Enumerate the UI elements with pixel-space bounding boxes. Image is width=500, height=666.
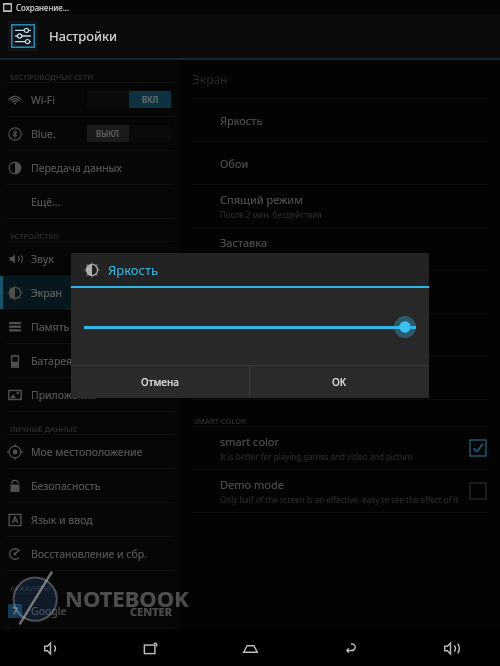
staticText: Безопасность	[31, 479, 101, 493]
button[interactable]: Приложения	[0, 378, 180, 411]
button[interactable]: Беспроводной проектор	[180, 357, 500, 399]
button[interactable]: Передача данных	[0, 151, 180, 184]
button[interactable]: Восстановление и сбр.	[0, 537, 180, 570]
button[interactable]: Recents	[100, 630, 200, 666]
staticText: ВКЛ	[142, 94, 159, 105]
button[interactable]: Blue.	[0, 117, 180, 150]
button[interactable]: ВЫКЛ	[87, 125, 171, 142]
button[interactable]: Экран	[0, 276, 180, 309]
button[interactable]: Google	[0, 594, 180, 627]
button[interactable]: ВКЛ	[87, 91, 171, 108]
staticText: Язык и ввод	[31, 513, 93, 527]
staticText: NOTEBOOK	[65, 583, 189, 613]
button[interactable]: Обои	[180, 142, 500, 184]
staticText: Заставка	[220, 235, 268, 250]
button[interactable]: Мое местоположение	[0, 435, 180, 468]
staticText: ЛИЧНЫЕ ДАННЫЕ	[10, 424, 77, 434]
button[interactable]: Звук	[0, 242, 180, 275]
staticText: Обои	[220, 156, 249, 171]
staticText: Память	[31, 320, 70, 334]
staticText: Передача данных	[31, 161, 122, 175]
staticText: Включен	[220, 381, 255, 392]
staticText: Звук	[31, 252, 54, 266]
staticText: Отмена	[141, 375, 179, 389]
button[interactable]: Back	[300, 630, 400, 666]
button[interactable]: Язык и ввод	[0, 503, 180, 536]
button[interactable]: Home	[200, 630, 300, 666]
button[interactable]: Demo mode	[180, 470, 500, 512]
button[interactable]: Отмена	[71, 366, 249, 398]
button[interactable]: smart color	[180, 427, 500, 469]
staticText: Only half of the screen is an effective,…	[220, 494, 459, 505]
staticText: Мое местоположение	[31, 445, 143, 459]
button[interactable]	[470, 440, 486, 456]
button[interactable]: Volume down	[0, 630, 100, 666]
staticText: smart color	[220, 434, 280, 449]
staticText: Demo mode	[220, 477, 284, 492]
button[interactable]: Заставка	[180, 228, 500, 270]
button[interactable]	[470, 483, 486, 499]
staticText: Google	[31, 604, 67, 618]
staticText: АККАУНТЫ	[10, 583, 51, 593]
button[interactable]: Спящий режим	[180, 185, 500, 227]
staticText: Поворот экрана	[220, 321, 306, 336]
button[interactable]: Яркость	[180, 99, 500, 141]
staticText: Беспроводной проектор	[220, 364, 351, 379]
button[interactable]: Память	[0, 310, 180, 343]
staticText: УСТРОЙСТВО	[10, 231, 60, 241]
button[interactable]: Поворот экрана	[180, 314, 500, 356]
staticText: Настройки	[49, 27, 118, 45]
staticText: Яркость	[220, 113, 263, 128]
staticText: Яркость	[108, 261, 159, 279]
button[interactable]: Безопасность	[0, 469, 180, 502]
button[interactable]: Ещё...	[0, 185, 180, 218]
staticText: Отключено	[220, 252, 264, 263]
button[interactable]: Батарея	[0, 344, 180, 377]
staticText: Экран	[192, 71, 228, 87]
button[interactable]: Настройки	[0, 14, 500, 58]
staticText: It is better for playing games and video…	[220, 451, 413, 462]
staticText: ВЫКЛ	[96, 128, 120, 139]
staticText: CENTER	[130, 604, 172, 619]
staticText: Восстановление и сбр.	[31, 547, 147, 561]
button[interactable]: Wi-Fi	[0, 83, 180, 116]
staticText: БЕСПРОВОДНЫЕ СЕТИ	[10, 72, 93, 82]
staticText: Ещё...	[31, 195, 61, 209]
staticText: Сохранение...	[16, 2, 70, 13]
staticText: Экран	[31, 286, 63, 300]
staticText: OK	[332, 375, 347, 389]
staticText: Приложения	[31, 388, 97, 402]
button[interactable]: OK	[250, 366, 429, 398]
staticText: SMART COLOR	[194, 416, 246, 426]
staticText: После 2 мин. бездействия	[220, 209, 322, 220]
staticText: Батарея	[31, 354, 73, 368]
staticText: Wi-Fi	[31, 93, 56, 107]
staticText: Blue.	[31, 127, 56, 141]
button[interactable]: Volume up	[400, 630, 500, 666]
staticText: Размер шрифта	[220, 278, 305, 293]
button[interactable]: Размер шрифта	[180, 271, 500, 313]
staticText: Спящий режим	[220, 192, 303, 207]
